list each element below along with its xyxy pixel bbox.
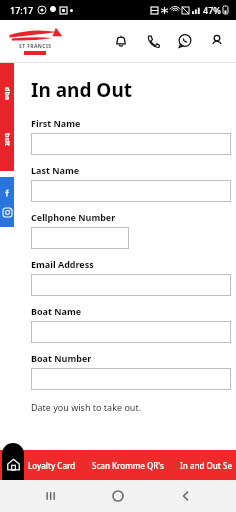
button[interactable]: Home	[101, 480, 135, 512]
button[interactable]	[31, 368, 231, 390]
staticText: 47%	[203, 4, 221, 16]
staticText: Email Address	[31, 258, 94, 270]
staticText: Date you wish to take out.	[31, 401, 142, 413]
staticText: Scan Kromme QR's	[92, 460, 164, 471]
staticText: Boat Name	[31, 305, 82, 317]
button[interactable]: Facebook	[0, 185, 14, 199]
button[interactable]: Back	[169, 480, 203, 512]
button[interactable]	[31, 180, 231, 202]
button[interactable]: Call	[142, 30, 164, 52]
staticText: In and Out	[31, 77, 132, 103]
button[interactable]: Instagram	[0, 205, 14, 219]
button[interactable]: Loyalty Card	[26, 454, 78, 477]
button[interactable]: St Francis logo	[6, 26, 64, 56]
button[interactable]	[31, 321, 231, 343]
staticText: First Name	[31, 117, 81, 129]
button[interactable]: Feedback	[0, 63, 14, 171]
staticText: Website	[0, 133, 22, 147]
staticText: 17:17	[10, 4, 34, 16]
button[interactable]: Recent apps	[34, 480, 68, 512]
button[interactable]	[31, 274, 231, 296]
button[interactable]: Scan Kromme QR's	[90, 454, 166, 477]
staticText: Feedback	[0, 87, 22, 101]
button[interactable]: Notifications	[110, 30, 132, 52]
staticText: ST FRANCIS	[19, 43, 52, 50]
staticText: Last Name	[31, 164, 80, 176]
button[interactable]	[31, 133, 231, 155]
button[interactable]: In and Out Se	[178, 454, 234, 477]
button[interactable]	[31, 227, 129, 249]
staticText: Cellphone Number	[31, 211, 116, 223]
button[interactable]: WhatsApp	[174, 30, 196, 52]
staticText: Loyalty Card	[28, 460, 76, 471]
staticText: In and Out Se	[180, 460, 232, 471]
staticText: Boat Number	[31, 352, 92, 364]
button[interactable]: Profile	[206, 30, 228, 52]
button[interactable]: Home	[2, 443, 24, 480]
